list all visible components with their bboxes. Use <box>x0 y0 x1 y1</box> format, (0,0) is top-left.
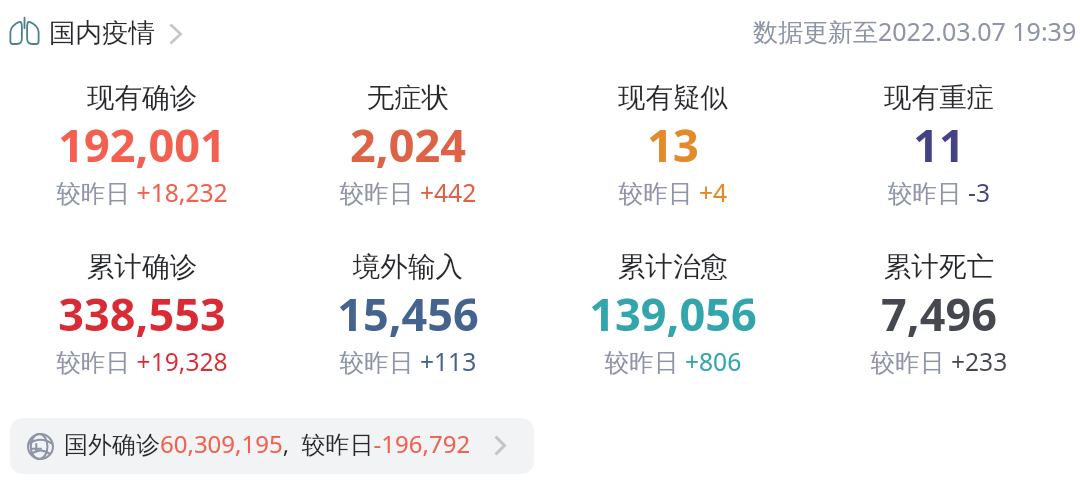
staticText: 较昨日 +806 <box>540 345 806 379</box>
staticText: 较昨日 +113 <box>275 345 541 379</box>
staticText: 较昨日 +442 <box>275 176 541 210</box>
staticText: 现有重症 <box>806 80 1072 115</box>
staticText: 13 <box>540 114 806 175</box>
button[interactable]: 国外疫情 <box>10 418 534 474</box>
staticText: 较昨日 +4 <box>540 176 806 210</box>
button[interactable]: 累计治愈 <box>540 241 806 386</box>
button[interactable]: 现有确诊 <box>9 72 275 217</box>
staticText: 7,496 <box>806 283 1072 344</box>
button[interactable]: 国内疫情 <box>8 14 182 46</box>
staticText: 较昨日 +233 <box>806 345 1072 379</box>
staticText: 国外确诊60,309,195, 较昨日-196,792 <box>64 427 471 460</box>
button[interactable]: 境外输入 <box>275 241 541 386</box>
staticText: 11 <box>806 114 1072 175</box>
staticText: 现有疑似 <box>540 80 806 115</box>
staticText: 累计治愈 <box>540 249 806 284</box>
staticText: 较昨日 -3 <box>806 176 1072 210</box>
button[interactable]: 无症状 <box>275 72 541 217</box>
staticText: 192,001 <box>9 114 275 175</box>
staticText: 无症状 <box>275 80 541 115</box>
staticText: 现有确诊 <box>9 80 275 115</box>
button[interactable]: 现有疑似 <box>540 72 806 217</box>
staticText: 2,024 <box>275 114 541 175</box>
button[interactable]: 现有重症 <box>806 72 1072 217</box>
staticText: 较昨日 +18,232 <box>9 176 275 210</box>
staticText: 境外输入 <box>275 249 541 284</box>
staticText: 15,456 <box>275 283 541 344</box>
staticText: 累计死亡 <box>806 249 1072 284</box>
button[interactable]: 累计确诊 <box>9 241 275 386</box>
other: 国内疫情 <box>9 16 40 45</box>
staticText: 累计确诊 <box>9 249 275 284</box>
staticText: 数据更新至2022.03.07 19:39 <box>753 14 1077 48</box>
staticText: 338,553 <box>9 283 275 344</box>
staticText: 国内疫情 <box>49 16 155 48</box>
staticText: 较昨日 +19,328 <box>9 345 275 379</box>
staticText: 139,056 <box>540 283 806 344</box>
button[interactable]: 累计死亡 <box>806 241 1072 386</box>
other: 国外疫情 <box>27 433 54 460</box>
